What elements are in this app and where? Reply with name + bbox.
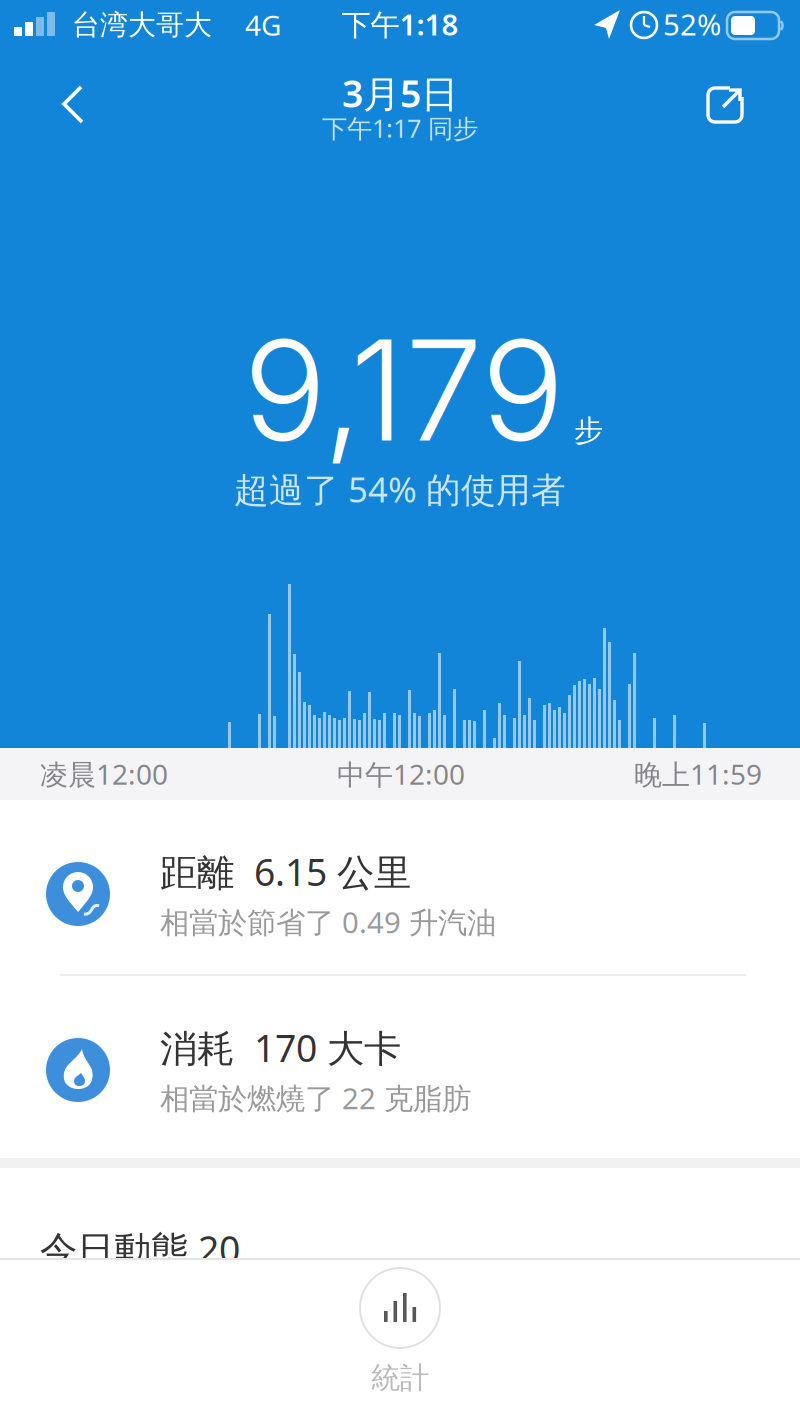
staticText: 4G [245, 6, 281, 44]
staticText: 相當於燃燒了 22 克脂肪 [160, 1078, 471, 1117]
button[interactable]: 距離 6.15 公里 [0, 806, 800, 982]
button[interactable]: 統計 [360, 1268, 440, 1396]
button[interactable] [48, 79, 98, 131]
staticText: 晚上11:59 [634, 755, 762, 793]
button[interactable]: 消耗 170 大卡 [0, 976, 800, 1164]
staticText: 統計 [371, 1360, 429, 1396]
staticText: 下午1:17 同步 [322, 111, 478, 145]
staticText: 今日動態 20 [40, 1224, 240, 1274]
staticText: 距離 6.15 公里 [160, 847, 411, 896]
staticText: 步 [574, 413, 603, 449]
staticText: 52% [663, 4, 721, 43]
staticText: 超過了 54% 的使用者 [234, 466, 566, 512]
staticText: 相當於節省了 0.49 升汽油 [160, 902, 496, 941]
staticText: 3月5日 [342, 68, 458, 118]
staticText: 中午12:00 [337, 755, 465, 793]
staticText: 凌晨12:00 [40, 755, 168, 793]
staticText: 消耗 170 大卡 [160, 1023, 401, 1072]
staticText: 台湾大哥大 [72, 8, 212, 42]
button[interactable] [700, 80, 750, 130]
staticText: 下午1:18 [341, 4, 458, 43]
staticText: 9,179 [243, 306, 564, 474]
